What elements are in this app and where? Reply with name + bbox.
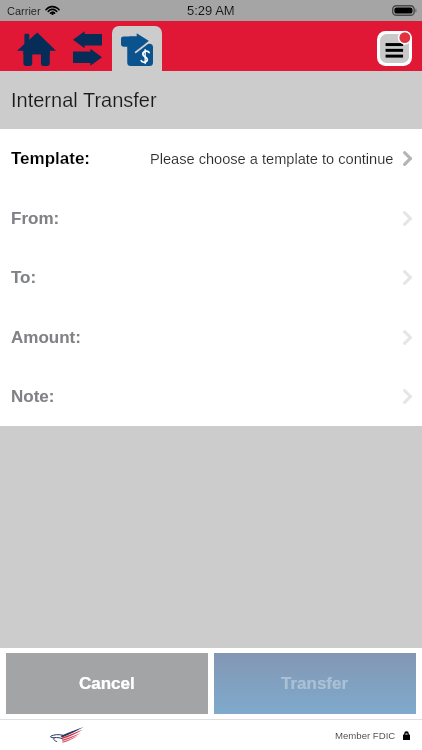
button[interactable]: Cancel	[6, 653, 208, 714]
button[interactable]: Transfers	[65, 25, 108, 71]
staticText: Template:	[11, 149, 91, 168]
staticText: Member FDIC	[335, 730, 396, 741]
staticText: Cancel	[79, 674, 135, 693]
staticText: Carrier	[7, 5, 41, 17]
button[interactable]: Internal Transfer	[112, 26, 162, 71]
staticText: Amount:	[11, 328, 81, 347]
button[interactable]: From:	[0, 188, 422, 248]
button[interactable]: Home	[6, 25, 65, 71]
staticText: Internal Transfer	[11, 89, 157, 111]
button[interactable]: Note:	[0, 367, 422, 426]
button[interactable]: Amount:	[0, 307, 422, 367]
staticText: 5:29 AM	[187, 3, 235, 18]
staticText: To:	[11, 268, 37, 287]
button[interactable]: Template:	[0, 129, 422, 188]
staticText: Transfer	[281, 674, 349, 693]
button[interactable]: Transfer	[214, 653, 416, 714]
staticText: Please choose a template to continue	[150, 151, 394, 167]
button[interactable]: To:	[0, 248, 422, 307]
staticText: Note:	[11, 387, 55, 406]
staticText: From:	[11, 209, 60, 228]
button[interactable]: Menu	[377, 31, 412, 66]
